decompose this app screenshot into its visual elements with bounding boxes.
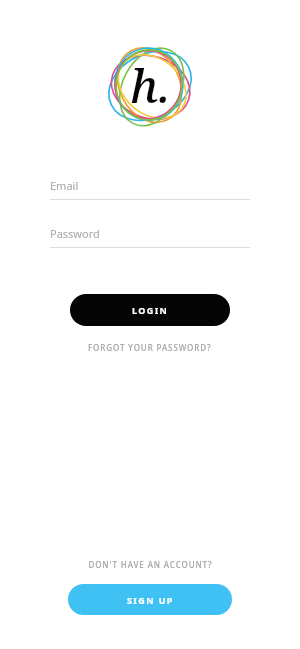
staticText: LOGIN	[132, 304, 169, 316]
button[interactable]: LOGIN	[70, 294, 230, 326]
staticText: DON'T HAVE AN ACCOUNT?	[88, 559, 213, 570]
staticText: SIGN UP	[127, 594, 174, 606]
staticText: Email	[50, 178, 79, 193]
button[interactable]: Email	[50, 178, 250, 200]
button[interactable]: Password	[50, 226, 250, 248]
button[interactable]: SIGN UP	[68, 584, 232, 615]
staticText: h.	[130, 54, 171, 117]
button[interactable]: FORGOT YOUR PASSWORD?	[82, 340, 218, 355]
staticText: Password	[50, 226, 100, 241]
staticText: FORGOT YOUR PASSWORD?	[88, 342, 212, 353]
